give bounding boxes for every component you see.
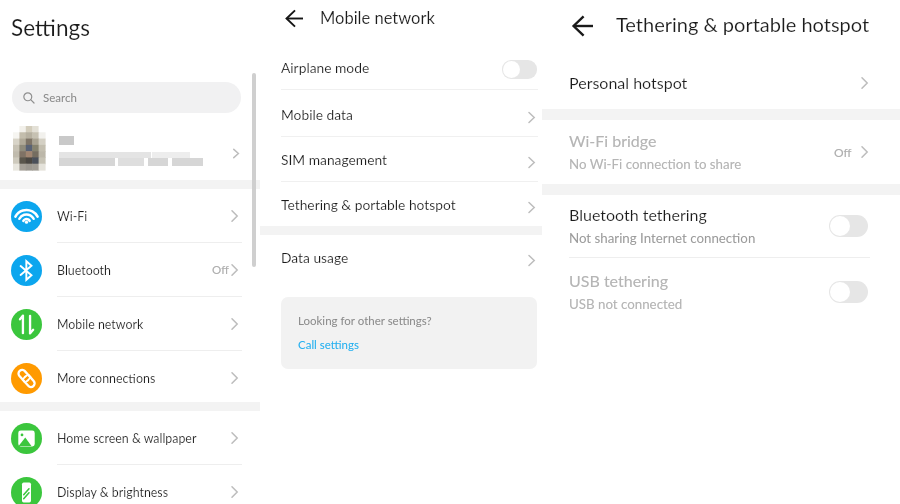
button[interactable]: Back: [286, 10, 303, 27]
staticText: Not sharing Internet connection: [569, 230, 756, 246]
staticText: Settings: [11, 14, 90, 41]
staticText: Mobile network: [320, 8, 435, 28]
button[interactable]: Home screen & wallpaper: [0, 411, 260, 465]
button[interactable]: Toggle: [829, 215, 868, 237]
staticText: Mobile network: [57, 317, 144, 332]
staticText: Bluetooth tethering: [569, 205, 707, 224]
button[interactable]: Airplane mode: [260, 45, 542, 90]
staticText: Mobile data: [281, 106, 353, 123]
staticText: USB tethering: [569, 271, 668, 290]
staticText: Data usage: [281, 249, 349, 266]
staticText: Tethering & portable hotspot: [616, 12, 870, 36]
staticText: Wi-Fi: [57, 209, 88, 224]
button[interactable]: Toggle: [502, 60, 537, 79]
staticText: SIM management: [281, 151, 387, 168]
staticText: Personal hotspot: [569, 73, 688, 92]
button[interactable]: Tethering & portable hotspot: [260, 182, 542, 227]
button[interactable]: Mobile network: [0, 297, 260, 351]
button[interactable]: Toggle: [829, 281, 868, 303]
staticText: No Wi-Fi connection to share: [569, 156, 742, 172]
button[interactable]: Display & brightness: [0, 465, 260, 504]
button[interactable]: Back: [573, 16, 593, 36]
staticText: More connections: [57, 371, 156, 386]
button[interactable]: Wi-Fi bridge: [542, 119, 900, 184]
button[interactable]: More connections: [0, 351, 260, 405]
staticText: Search: [43, 91, 77, 105]
button[interactable]: Data usage: [260, 235, 542, 280]
staticText: Tethering & portable hotspot: [281, 196, 456, 213]
button[interactable]: [0, 120, 260, 180]
staticText: USB not connected: [569, 296, 683, 312]
button[interactable]: Search: [12, 82, 241, 113]
staticText: Off: [212, 263, 229, 277]
button[interactable]: USB tethering: [542, 259, 900, 324]
staticText: Looking for other settings?: [298, 314, 432, 328]
staticText: Home screen & wallpaper: [57, 431, 197, 446]
button[interactable]: Mobile data: [260, 92, 542, 137]
button[interactable]: SIM management: [260, 137, 542, 182]
staticText: Airplane mode: [281, 59, 370, 76]
button[interactable]: Bluetooth: [0, 243, 260, 297]
button[interactable]: Bluetooth tethering: [542, 193, 900, 258]
staticText: Display & brightness: [57, 485, 169, 500]
button[interactable]: Wi-Fi: [0, 189, 260, 243]
button[interactable]: Personal hotspot: [542, 58, 900, 107]
staticText: Bluetooth: [57, 263, 111, 278]
staticText: Off: [834, 145, 852, 159]
staticText: Wi-Fi bridge: [569, 131, 657, 150]
button[interactable]: Call settings: [298, 338, 359, 352]
